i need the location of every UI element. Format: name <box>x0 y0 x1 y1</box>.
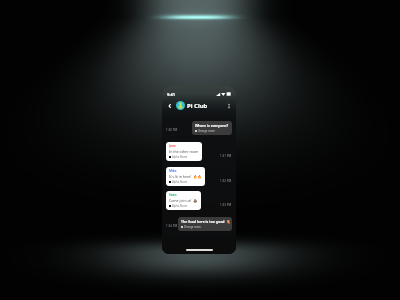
staticText: Come join us! <box>169 198 192 203</box>
staticText: Alpha Room <box>172 155 188 159</box>
staticText: Alpha Room <box>172 204 188 208</box>
staticText: Omega room <box>184 225 201 229</box>
button[interactable]: Where is everyone? <box>192 121 232 135</box>
staticText: Alpha Room <box>172 180 188 184</box>
button[interactable]: More options <box>224 101 233 110</box>
button[interactable]: The food here is too good <box>178 217 232 231</box>
staticText: The food here is too good <box>181 219 225 224</box>
staticText: In the other room <box>169 149 199 154</box>
staticText: 1:33 PM <box>220 203 232 207</box>
staticText: Jane <box>169 144 176 148</box>
staticText: 💩 <box>193 199 198 203</box>
button[interactable]: Mike <box>166 167 205 186</box>
staticText: 1:34 PM <box>166 224 178 228</box>
staticText: 9:41 <box>167 92 175 97</box>
staticText: Sean <box>169 193 177 197</box>
staticText: Omega room <box>198 129 215 133</box>
button[interactable]: Sean <box>166 191 201 210</box>
staticText: 🔥🔥 <box>193 175 202 179</box>
staticText: Mike <box>169 169 177 173</box>
staticText: 1:31 PM <box>220 154 232 158</box>
staticText: It's lit in here! <box>169 174 192 179</box>
staticText: 1:32 PM <box>220 179 232 183</box>
staticText: Pi Club <box>187 102 208 110</box>
button[interactable]: Back <box>165 101 174 110</box>
staticText: 1:30 PM <box>166 128 178 132</box>
staticText: 🍕 <box>226 220 229 224</box>
staticText: Where is everyone? <box>195 123 229 128</box>
button[interactable]: Jane <box>166 142 202 161</box>
